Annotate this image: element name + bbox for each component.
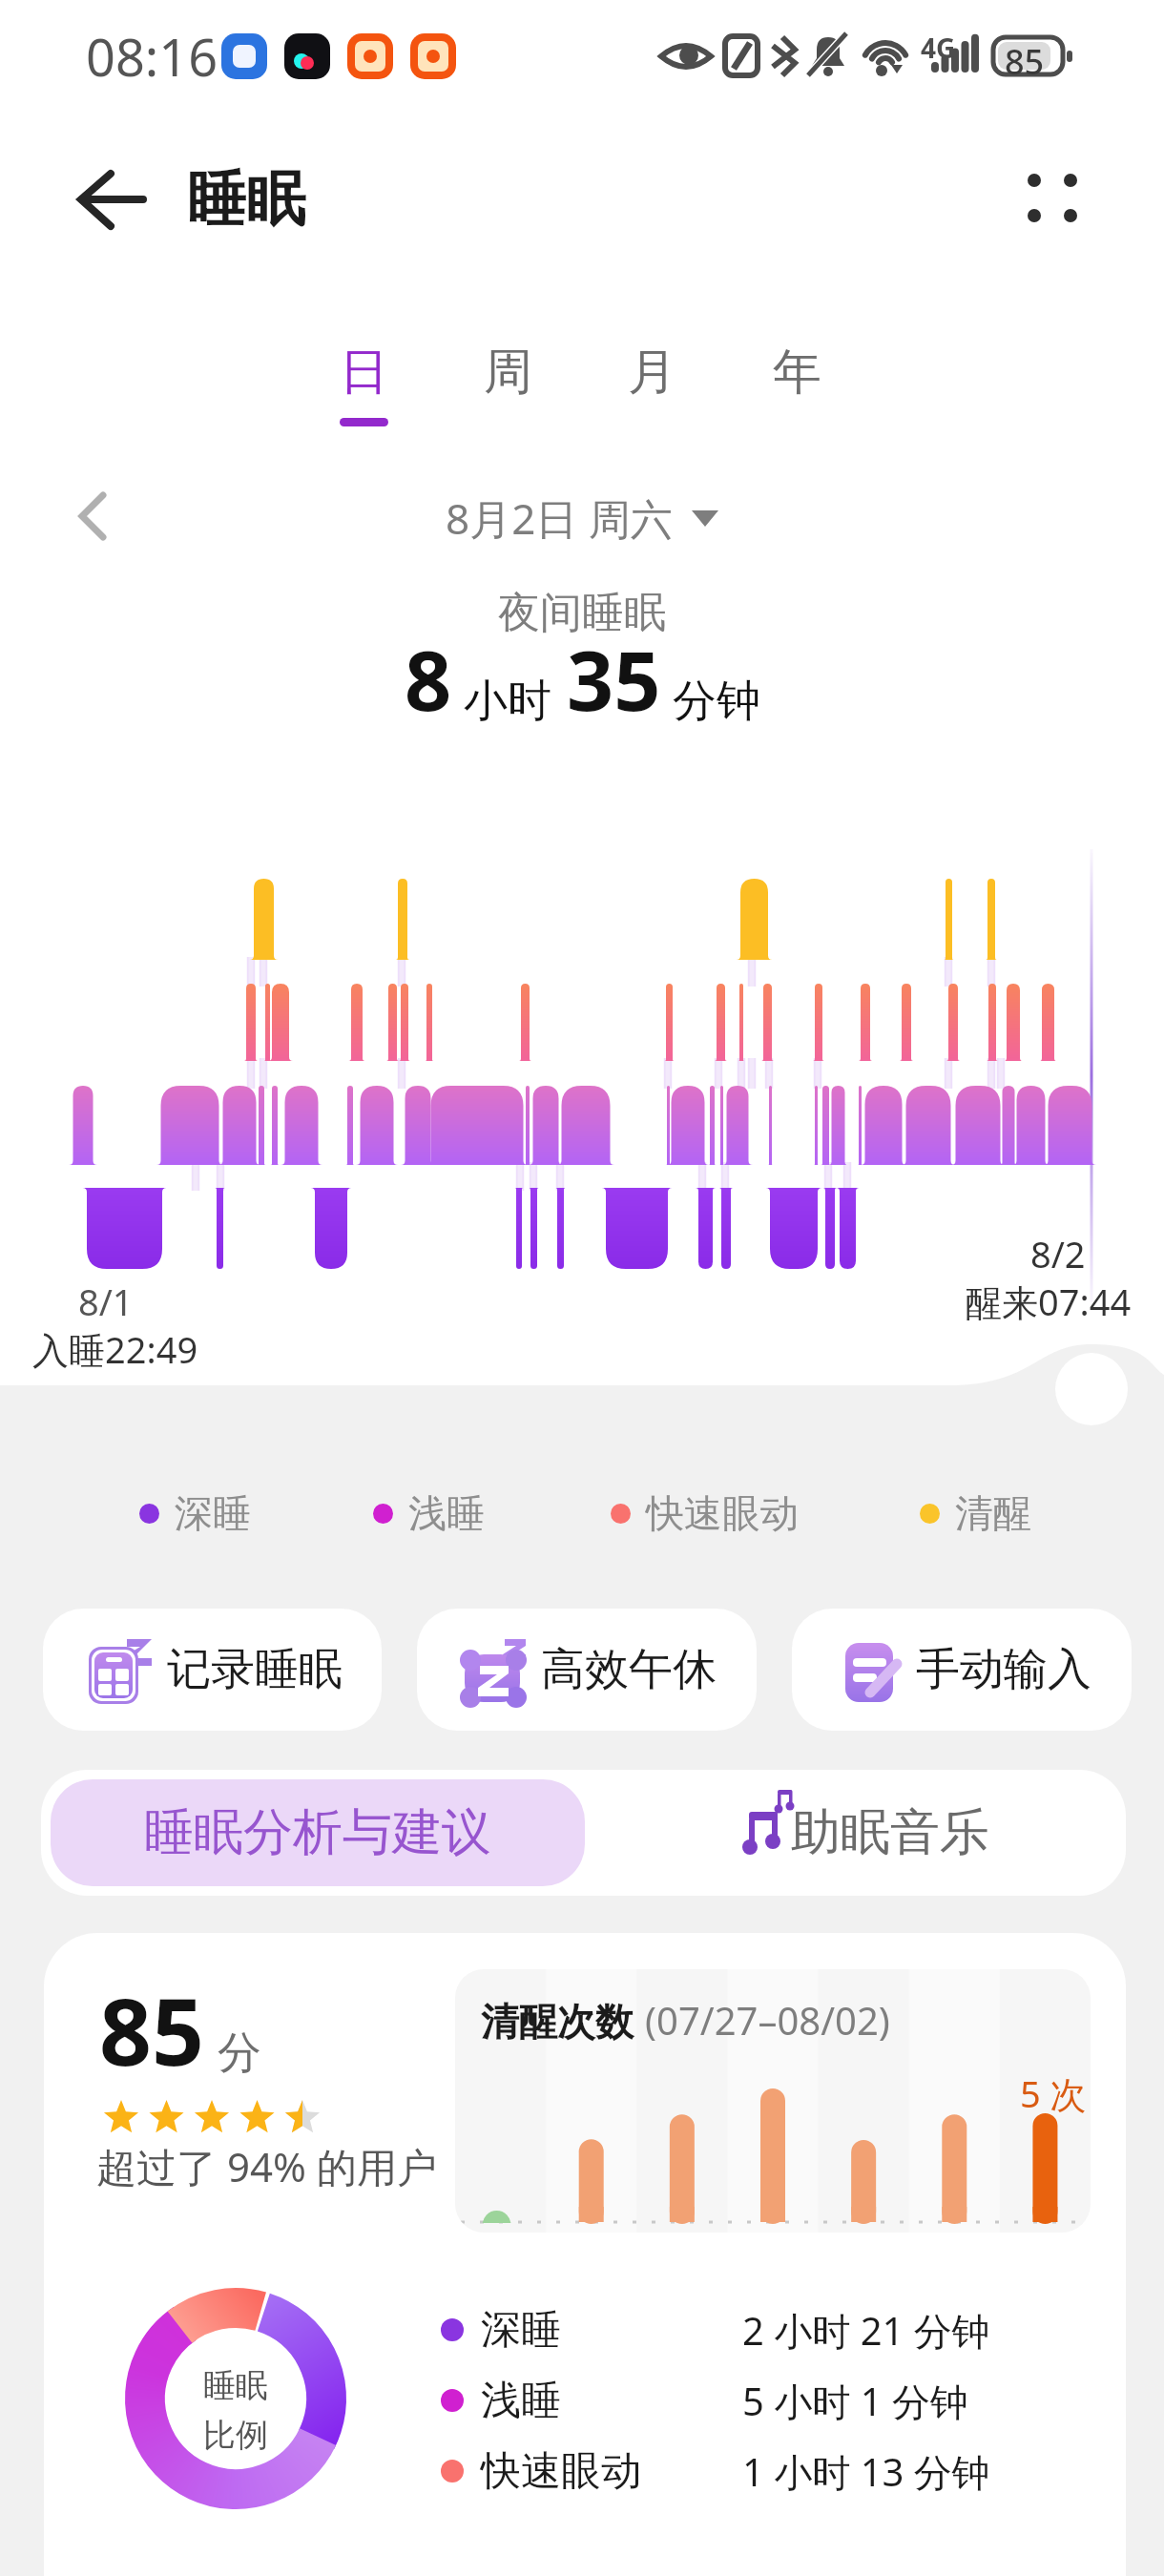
button[interactable]: More options xyxy=(1017,160,1093,237)
button[interactable]: 睡眠分析与建议 xyxy=(51,1779,585,1886)
staticText: 日 xyxy=(340,342,388,403)
staticText: 快速眼动 xyxy=(646,1489,799,1537)
staticText: 清醒 xyxy=(955,1489,1031,1537)
staticText: 睡眠 xyxy=(187,162,305,237)
staticText: 月 xyxy=(628,342,676,403)
staticText: 小时 xyxy=(464,674,551,729)
staticText: 手动输入 xyxy=(916,1642,1091,1697)
staticText: 35 xyxy=(567,623,661,735)
button[interactable]: 月 xyxy=(594,342,709,447)
staticText: 4G xyxy=(921,30,956,66)
button[interactable]: 手动输入 xyxy=(792,1609,1132,1731)
staticText: 08:16 xyxy=(86,21,218,92)
staticText: 高效午休 xyxy=(541,1642,717,1697)
staticText: 快速眼动 xyxy=(481,2446,641,2497)
button[interactable]: 高效午休 xyxy=(417,1609,757,1731)
button[interactable]: 浅睡 xyxy=(373,1485,485,1542)
staticText: 夜间睡眠 xyxy=(498,587,666,639)
staticText: 1 小时 13 分钟 xyxy=(742,2445,990,2498)
staticText: 分 xyxy=(218,2025,261,2081)
staticText: 浅睡 xyxy=(481,2376,561,2426)
button[interactable]: 深睡 xyxy=(139,1485,251,1542)
button[interactable]: Expand sleep details xyxy=(1055,1353,1128,1425)
staticText: 85 xyxy=(1005,38,1045,85)
staticText: 醒来07:44 xyxy=(966,1277,1132,1326)
staticText: 5 小时 1 分钟 xyxy=(742,2375,968,2427)
staticText: 深睡 xyxy=(481,2305,561,2356)
staticText: 8月2日 周六 xyxy=(446,489,673,547)
staticText: 8 xyxy=(405,623,452,735)
button[interactable]: 记录睡眠 xyxy=(43,1609,382,1731)
button[interactable]: 8月2日 周六 xyxy=(446,489,718,547)
staticText: 年 xyxy=(773,342,821,403)
staticText: 深睡 xyxy=(175,1489,251,1537)
button[interactable]: Back xyxy=(69,158,155,240)
staticText: 记录睡眠 xyxy=(167,1642,343,1697)
staticText: 睡眠 xyxy=(203,2365,268,2406)
button[interactable]: 快速眼动 xyxy=(441,2441,990,2501)
button[interactable]: 快速眼动 xyxy=(611,1485,799,1542)
button[interactable]: 深睡 xyxy=(441,2300,990,2359)
staticText: 清醒次数 xyxy=(481,1998,634,2046)
staticText: 8/1 xyxy=(78,1277,134,1326)
staticText: 入睡22:49 xyxy=(32,1324,198,1374)
staticText: 超过了 94% 的用户 xyxy=(96,2139,437,2193)
staticText: 5 次 xyxy=(1020,2068,1087,2118)
staticText: 2 小时 21 分钟 xyxy=(742,2304,990,2357)
staticText: 周 xyxy=(484,342,532,403)
button[interactable]: Previous day xyxy=(65,488,122,545)
button[interactable]: 周 xyxy=(450,342,565,447)
staticText: 助眠音乐 xyxy=(791,1801,989,1864)
button[interactable]: 助眠音乐 xyxy=(606,1770,1126,1896)
staticText: 比例 xyxy=(203,2415,268,2456)
staticText: 分钟 xyxy=(673,674,760,729)
staticText: (07/27–08/02) xyxy=(645,1994,890,2046)
button[interactable]: 浅睡 xyxy=(441,2371,968,2430)
staticText: 浅睡 xyxy=(408,1489,485,1537)
staticText: 85 xyxy=(99,1967,204,2092)
staticText: 8/2 xyxy=(1030,1229,1086,1278)
button[interactable]: 年 xyxy=(739,342,854,447)
staticText: 睡眠分析与建议 xyxy=(144,1801,491,1864)
button[interactable]: 日 xyxy=(306,342,421,447)
button[interactable]: 清醒 xyxy=(920,1485,1031,1542)
